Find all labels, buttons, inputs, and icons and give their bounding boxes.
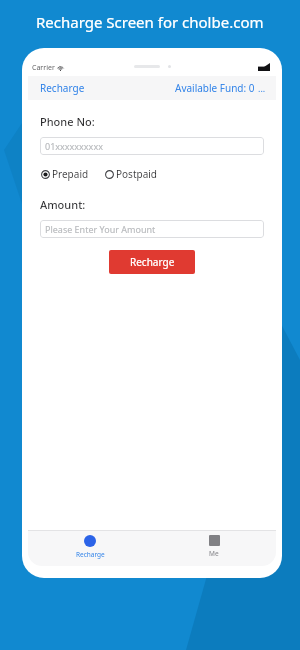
staticText: Recharge [40, 81, 85, 95]
button[interactable]: Recharge [109, 250, 195, 274]
staticText: Recharge Screen for cholbe.com [36, 12, 264, 32]
staticText: Amount: [40, 197, 86, 212]
staticText: Recharge [76, 550, 105, 559]
button[interactable]: Recharge [28, 530, 152, 559]
staticText: Available Fund: 0 [175, 81, 255, 95]
button[interactable]: Prepaid [40, 165, 90, 183]
button[interactable]: Available Fund: 0 [173, 79, 268, 97]
button[interactable]: Postpaid [104, 165, 158, 183]
staticText: Me [209, 549, 219, 558]
button[interactable]: Recharge [38, 79, 87, 97]
button[interactable]: 01xxxxxxxxxx [40, 137, 264, 155]
staticText: Phone No: [40, 114, 95, 129]
button[interactable]: Please Enter Your Amount [40, 220, 264, 238]
staticText: Please Enter Your Amount [45, 223, 156, 235]
button[interactable]: Me [152, 530, 276, 558]
staticText: 01xxxxxxxxxx [45, 140, 103, 152]
staticText: Carrier [32, 63, 55, 73]
staticText: ... [258, 82, 266, 94]
staticText: Postpaid [116, 167, 157, 181]
staticText: Recharge [130, 255, 175, 269]
staticText: Prepaid [52, 167, 89, 181]
